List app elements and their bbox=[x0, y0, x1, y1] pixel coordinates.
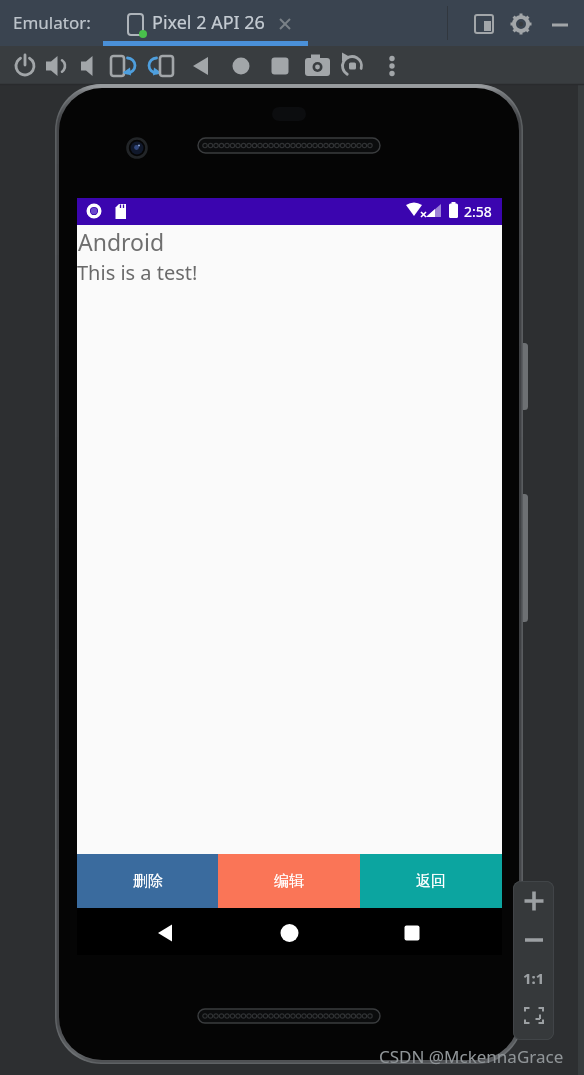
button[interactable]: 返回 bbox=[360, 854, 502, 908]
staticText: Emulator: bbox=[13, 11, 91, 34]
staticText: This is a test! bbox=[77, 259, 198, 286]
staticText: Android bbox=[78, 226, 165, 257]
button[interactable]: 编辑 bbox=[218, 854, 360, 908]
button[interactable] bbox=[0, 46, 584, 85]
staticText: Pixel 2 API 26 bbox=[152, 10, 265, 35]
button[interactable]: Pixel 2 API 26 bbox=[103, 0, 308, 46]
staticText: CSDN @MckennaGrace bbox=[379, 1045, 564, 1068]
staticText: 返回 bbox=[416, 872, 446, 891]
staticText: 1:1 bbox=[523, 968, 545, 988]
button[interactable]: 1:1 bbox=[513, 881, 554, 1040]
staticText: 删除 bbox=[133, 872, 163, 891]
staticText: 2:58 bbox=[464, 202, 492, 221]
button[interactable]: 删除 bbox=[77, 854, 218, 908]
staticText: 编辑 bbox=[274, 872, 304, 891]
